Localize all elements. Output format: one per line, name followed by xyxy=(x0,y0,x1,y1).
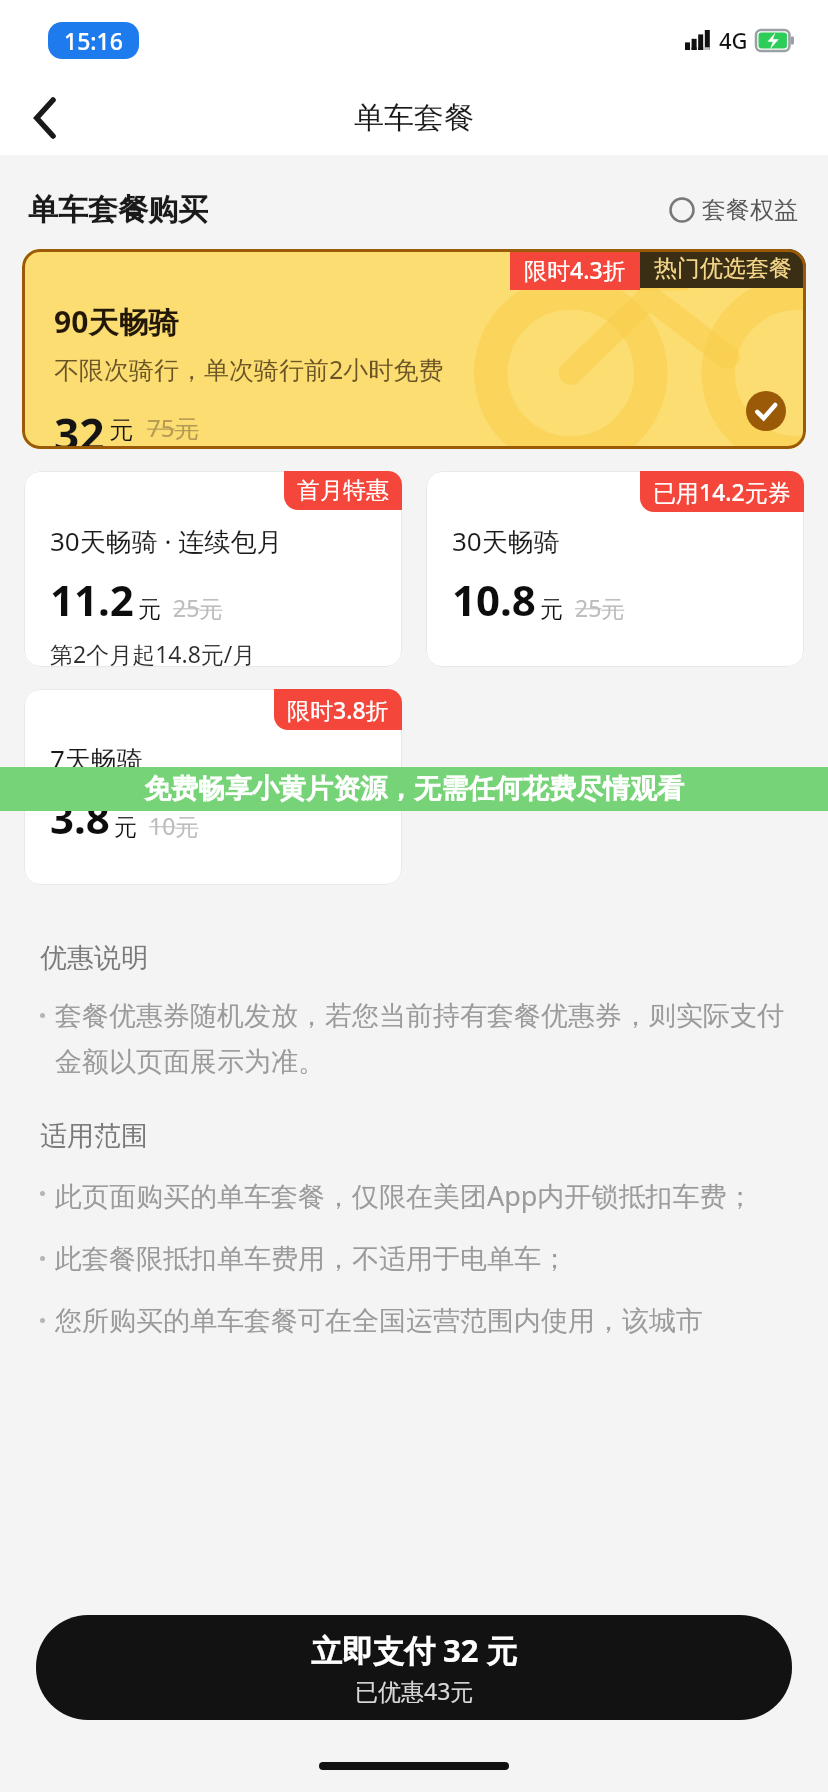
button[interactable]: 立即支付 32 元 xyxy=(36,1615,792,1720)
staticText: 套餐优惠券随机发放，若您当前持有套餐优惠券，则实际支付金额以页面展示为准。 xyxy=(55,999,788,1079)
staticText: 10元 xyxy=(149,810,199,841)
staticText: 3.8 xyxy=(50,789,110,846)
button[interactable]: 7天畅骑 xyxy=(24,689,402,885)
staticText: 首月特惠 xyxy=(297,476,389,505)
staticText: 套餐权益 xyxy=(702,195,798,225)
button[interactable]: Back xyxy=(18,90,74,146)
staticText: 30天畅骑 xyxy=(452,523,560,559)
staticText: 免费畅享小黄片资源，无需任何花费尽情观看 xyxy=(144,772,684,806)
staticText: 元 xyxy=(114,813,137,842)
staticText: 限时3.8折 xyxy=(287,694,389,725)
staticText: 25元 xyxy=(575,592,625,623)
staticText: 90天畅骑 xyxy=(54,301,179,342)
staticText: 优惠说明 xyxy=(40,941,148,975)
staticText: 适用范围 xyxy=(40,1119,148,1153)
staticText: 此页面购买的单车套餐，仅限在美团App内开锁抵扣车费； xyxy=(55,1177,754,1214)
staticText: 30天畅骑 · 连续包月 xyxy=(50,523,283,559)
staticText: 元 xyxy=(109,415,133,445)
staticText: 此套餐限抵扣单车费用，不适用于电单车； xyxy=(55,1242,568,1276)
staticText: 10.8 xyxy=(452,571,536,628)
staticText: 第2个月起14.8元/月 xyxy=(50,638,256,667)
staticText: 已优惠43元 xyxy=(355,1675,474,1706)
button[interactable]: 套餐权益 xyxy=(665,191,802,229)
staticText: 限时4.3折 xyxy=(524,254,626,285)
staticText: 25元 xyxy=(173,592,223,623)
staticText: 热门优选套餐 xyxy=(654,254,792,283)
staticText: 您所购买的单车套餐可在全国运营范围内使用，该城市 xyxy=(55,1304,703,1338)
staticText: 15:16 xyxy=(64,25,123,56)
staticText: 已用14.2元券 xyxy=(653,476,791,507)
staticText: 不限次骑行，单次骑行前2小时免费 xyxy=(54,352,444,386)
staticText: 4G xyxy=(719,25,748,55)
staticText: 11.2 xyxy=(50,571,134,628)
staticText: 75元 xyxy=(147,411,199,444)
staticText: 立即支付 32 元 xyxy=(311,1629,518,1671)
button[interactable]: 30天畅骑 xyxy=(426,471,804,667)
staticText: 7天畅骑 xyxy=(50,741,143,777)
staticText: 单车套餐 xyxy=(354,99,474,137)
staticText: 32 xyxy=(54,404,105,449)
staticText: 元 xyxy=(540,595,563,624)
staticText: 单车套餐购买 xyxy=(28,191,208,229)
button[interactable]: 限时4.3折 xyxy=(22,249,806,449)
staticText: 元 xyxy=(138,595,161,624)
button[interactable]: 30天畅骑 · 连续包月 xyxy=(24,471,402,667)
